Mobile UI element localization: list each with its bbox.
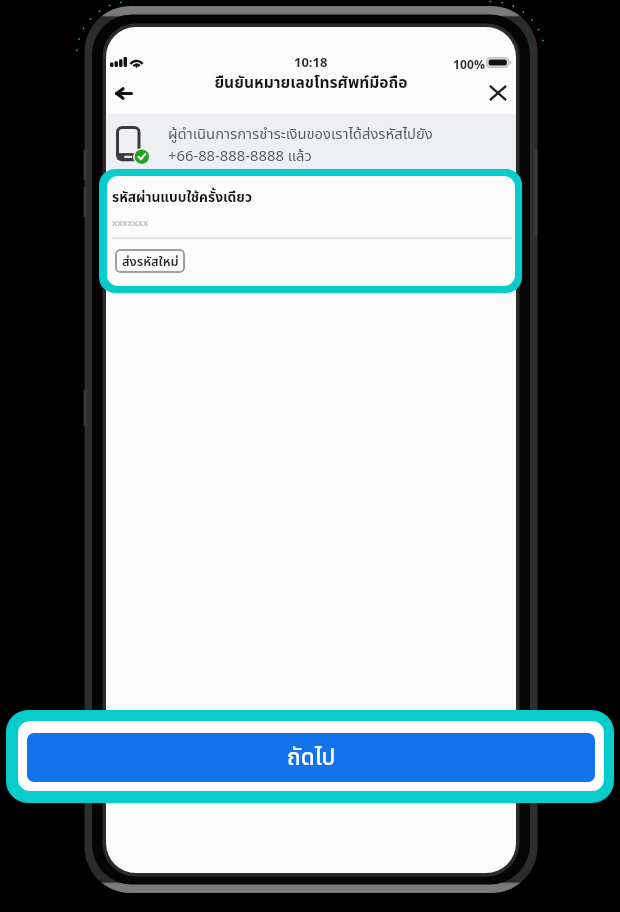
staticText: 10:18 xyxy=(294,53,328,73)
staticText: 100% xyxy=(453,56,485,74)
staticText: xxxxxxx xyxy=(112,216,149,230)
staticText: ส่งรหัสใหม่ xyxy=(122,252,179,271)
staticText: รหัสผ่านแบบใช้ครั้งเดียว xyxy=(112,187,253,208)
staticText: ผู้ดำเนินการการชำระเงินของเราได้ส่งรหัสไ… xyxy=(168,123,433,145)
button[interactable]: Back xyxy=(106,74,140,112)
button[interactable]: Close xyxy=(479,74,516,112)
button[interactable]: รหัสผ่านแบบใช้ครั้งเดียว xyxy=(99,169,522,293)
button[interactable]: ส่งรหัสใหม่ xyxy=(115,249,185,273)
staticText: +66-88-888-8888 แล้ว xyxy=(168,145,312,167)
staticText: ยืนยันหมายเลขโทรศัพท์มือถือ xyxy=(214,71,408,95)
staticText: ถัดไป xyxy=(287,741,336,775)
button[interactable]: ถัดไป xyxy=(27,733,595,782)
